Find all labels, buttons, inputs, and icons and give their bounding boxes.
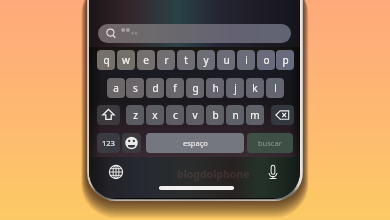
staticText: buscar xyxy=(258,138,282,148)
staticText: l xyxy=(274,81,277,95)
staticText: o xyxy=(263,53,270,67)
button[interactable]: h xyxy=(206,78,224,98)
button[interactable]: Shift xyxy=(97,105,120,125)
staticText: w xyxy=(122,53,130,67)
button[interactable]: y xyxy=(197,50,215,70)
button[interactable]: r xyxy=(157,50,175,70)
staticText: u xyxy=(223,53,230,67)
button[interactable]: p xyxy=(276,50,294,70)
staticText: d xyxy=(152,81,159,95)
staticText: p xyxy=(282,53,289,67)
staticText: k xyxy=(252,81,258,95)
button[interactable]: w xyxy=(117,50,135,70)
staticText: n xyxy=(232,108,239,122)
button[interactable]: g xyxy=(186,78,204,98)
staticText: 123 xyxy=(102,138,115,148)
button[interactable]: buscar xyxy=(247,133,293,153)
button[interactable]: m xyxy=(246,105,264,125)
staticText: s xyxy=(133,81,138,95)
staticText: q xyxy=(103,53,110,67)
button[interactable]: l xyxy=(266,78,284,98)
button[interactable]: Emoji xyxy=(122,133,141,153)
staticText: h xyxy=(212,81,219,95)
button[interactable]: 123 xyxy=(97,133,120,153)
staticText: v xyxy=(192,108,198,122)
staticText: blogdoiphone xyxy=(177,167,250,181)
button[interactable]: j xyxy=(226,78,244,98)
button[interactable]: x xyxy=(146,105,164,125)
staticText: i xyxy=(245,53,248,67)
button[interactable]: k xyxy=(246,78,264,98)
button[interactable]: espaço xyxy=(146,133,244,153)
button[interactable]: f xyxy=(166,78,184,98)
button[interactable]: i xyxy=(237,50,255,70)
button[interactable]: Dictate xyxy=(265,164,281,180)
button[interactable]: b xyxy=(206,105,224,125)
staticText: c xyxy=(173,108,178,122)
staticText: g xyxy=(192,81,199,95)
staticText: b xyxy=(212,108,219,122)
button[interactable]: s xyxy=(126,78,144,98)
staticText: espaço xyxy=(183,138,208,148)
button[interactable]: Search xyxy=(98,24,291,43)
button[interactable]: a xyxy=(107,78,125,98)
button[interactable]: d xyxy=(146,78,164,98)
staticText: a xyxy=(113,81,119,95)
staticText: z xyxy=(133,108,138,122)
staticText: t xyxy=(184,53,188,67)
button[interactable]: Backspace xyxy=(271,105,294,125)
button[interactable]: v xyxy=(186,105,204,125)
button[interactable]: t xyxy=(177,50,195,70)
staticText: m xyxy=(250,108,260,122)
staticText: e xyxy=(143,53,149,67)
staticText: r xyxy=(164,53,169,67)
button[interactable]: c xyxy=(166,105,184,125)
button[interactable]: o xyxy=(257,50,275,70)
button[interactable]: e xyxy=(137,50,155,70)
staticText: y xyxy=(203,53,209,67)
button[interactable]: q xyxy=(97,50,115,70)
staticText: x xyxy=(152,108,158,122)
staticText: f xyxy=(173,81,177,95)
button[interactable]: z xyxy=(126,105,144,125)
button[interactable]: Change keyboard xyxy=(108,164,124,180)
button[interactable]: n xyxy=(226,105,244,125)
staticText: j xyxy=(234,81,237,95)
button[interactable]: u xyxy=(217,50,235,70)
